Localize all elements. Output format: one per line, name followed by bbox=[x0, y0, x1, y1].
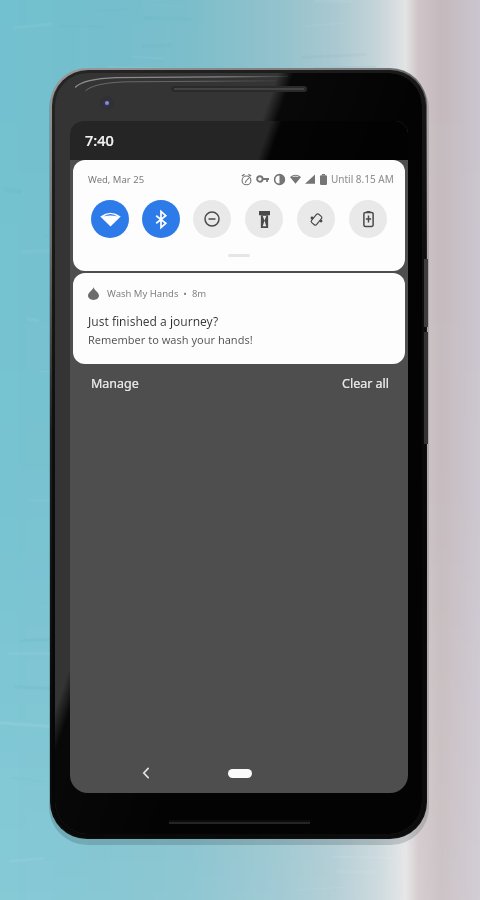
button[interactable]: Clear all bbox=[325, 366, 408, 399]
button[interactable]: Do not disturb bbox=[193, 200, 231, 238]
button[interactable]: Battery saver bbox=[349, 200, 387, 238]
staticText: Clear all bbox=[342, 375, 390, 392]
staticText: Just finished a journey? bbox=[88, 313, 219, 329]
button[interactable]: Manage bbox=[70, 366, 156, 399]
staticText: Until 8.15 AM bbox=[331, 172, 394, 186]
button[interactable]: Back bbox=[132, 759, 160, 787]
button[interactable]: Auto rotate bbox=[297, 200, 335, 238]
staticText: Wash My Hands • 8m bbox=[107, 287, 207, 300]
staticText: Manage bbox=[91, 375, 139, 392]
staticText: Wed, Mar 25 bbox=[88, 173, 145, 186]
button[interactable]: Flashlight bbox=[245, 200, 283, 238]
button[interactable]: Wash My Hands • 8m bbox=[73, 273, 405, 364]
button[interactable]: Wi-Fi bbox=[91, 200, 129, 238]
button[interactable]: Bluetooth bbox=[142, 200, 180, 238]
staticText: 7:40 bbox=[85, 130, 114, 150]
button[interactable]: Home bbox=[228, 769, 252, 778]
staticText: Remember to wash your hands! bbox=[88, 332, 253, 347]
